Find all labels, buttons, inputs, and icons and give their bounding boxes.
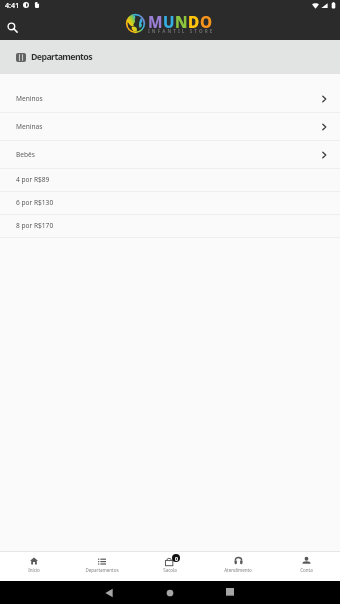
button[interactable]: Início — [0, 552, 68, 581]
staticText: Atendimento — [224, 567, 252, 573]
button[interactable]: 6 por R$130 — [0, 192, 340, 214]
staticText: Bebês — [16, 150, 35, 159]
button[interactable]: Recents — [222, 584, 238, 600]
staticText: 4:41 — [5, 0, 20, 10]
staticText: D — [188, 12, 200, 33]
staticText: Departamentos — [85, 567, 119, 573]
staticText: N — [175, 12, 188, 33]
button[interactable]: Departamentos — [68, 552, 136, 581]
button[interactable]: Home — [162, 585, 178, 601]
staticText: Departamentos — [31, 51, 93, 63]
staticText: U — [163, 12, 175, 33]
button[interactable]: 4 por R$89 — [0, 169, 340, 191]
button[interactable]: Meninas — [0, 113, 340, 140]
button[interactable]: Atendimento — [204, 552, 272, 581]
staticText: O — [200, 12, 213, 33]
button[interactable]: 0 — [136, 552, 204, 581]
staticText: M — [148, 12, 163, 33]
staticText: Meninos — [16, 94, 43, 103]
staticText: 8 por R$170 — [16, 221, 54, 230]
staticText: Conta — [300, 567, 313, 573]
staticText: 4 por R$89 — [16, 175, 50, 184]
button[interactable]: Meninos — [0, 85, 340, 112]
staticText: Meninas — [16, 122, 43, 131]
staticText: 6 por R$130 — [16, 198, 54, 207]
button[interactable]: Back — [101, 585, 117, 601]
staticText: INFANTIL STORE — [148, 28, 215, 34]
staticText: Sacola — [163, 567, 177, 573]
button[interactable]: Conta — [272, 552, 340, 581]
staticText: 0 — [175, 555, 178, 562]
button[interactable]: Search — [2, 17, 22, 37]
button[interactable]: Bebês — [0, 141, 340, 168]
button[interactable]: 8 por R$170 — [0, 215, 340, 237]
staticText: Início — [28, 567, 40, 573]
